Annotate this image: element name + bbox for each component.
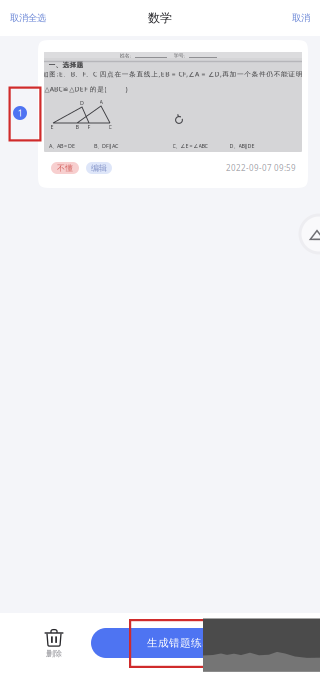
- button[interactable]: Upload: [298, 213, 320, 255]
- staticText: C: [108, 123, 111, 131]
- staticText: D: [80, 99, 84, 107]
- staticText: 生成错题练习: [147, 636, 213, 649]
- staticText: F: [87, 123, 90, 131]
- button[interactable]: 生成错题练习: [91, 628, 269, 658]
- staticText: △ABC≌△DEF 的是( ): [44, 85, 127, 93]
- button[interactable]: 姓名:: [38, 40, 308, 188]
- staticText: A: [99, 98, 102, 106]
- staticText: 不懂: [57, 163, 73, 173]
- staticText: 2022-09-07 09:59: [226, 163, 296, 173]
- staticText: 一、选择题: [48, 61, 83, 69]
- staticText: E: [50, 123, 53, 131]
- button[interactable]: 删除: [29, 623, 79, 663]
- staticText: 编辑: [91, 163, 107, 173]
- button[interactable]: 取消全选: [0, 0, 70, 36]
- staticText: 删除: [46, 649, 62, 658]
- staticText: A、AB = DE: [49, 142, 75, 149]
- staticText: 1: [17, 107, 22, 119]
- staticText: 取消: [292, 12, 310, 24]
- staticText: 姓名:: [119, 52, 130, 59]
- staticText: D、AB∥DE: [229, 142, 254, 149]
- button[interactable]: Question 1 selected: [7, 100, 33, 126]
- staticText: 1.如图:E、B、F、C 四点在一条直线上,EB = CF,∠A = ∠D,再加…: [35, 70, 303, 78]
- staticText: B: [75, 123, 78, 131]
- staticText: B、DF∥AC: [94, 142, 118, 149]
- staticText: 数学: [148, 11, 172, 25]
- staticText: C、∠E = ∠ABC: [172, 142, 207, 149]
- staticText: 取消全选: [10, 12, 46, 24]
- button[interactable]: 取消: [250, 0, 320, 36]
- staticText: 学号:: [173, 52, 184, 59]
